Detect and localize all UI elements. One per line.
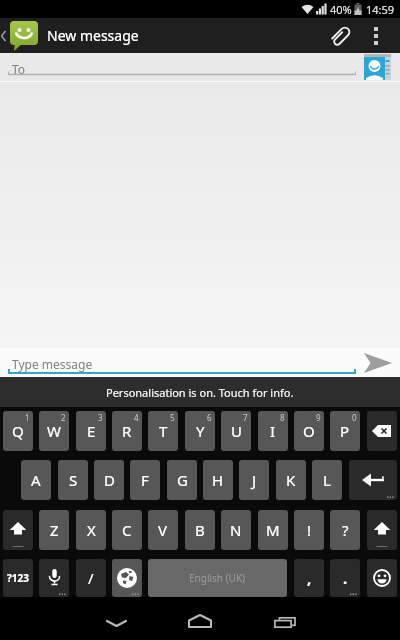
button[interactable]: J (239, 460, 269, 500)
staticText: Personalisation is on. Touch for info. (106, 385, 294, 400)
button[interactable] (364, 54, 391, 80)
button[interactable] (39, 559, 69, 597)
staticText: O (303, 421, 315, 441)
staticText: 3 (98, 412, 103, 423)
staticText: C (122, 520, 132, 540)
staticText: New message (47, 26, 139, 45)
staticText: H (212, 470, 224, 490)
staticText: N (230, 520, 242, 540)
button[interactable]: U (221, 411, 251, 451)
button[interactable] (265, 608, 305, 636)
button[interactable] (319, 18, 363, 53)
staticText: ! (307, 520, 312, 540)
button[interactable]: English (UK) (148, 559, 287, 597)
button[interactable] (364, 353, 392, 373)
staticText: 4 (134, 412, 139, 423)
staticText: R (122, 421, 132, 441)
button[interactable]: ? (330, 510, 360, 550)
staticText: 7 (243, 412, 248, 423)
staticText: K (286, 470, 296, 490)
button[interactable]: B (185, 510, 215, 550)
button[interactable]: K (276, 460, 306, 500)
staticText: 2 (61, 412, 66, 423)
staticText: To (12, 61, 26, 77)
staticText: ? (342, 520, 349, 540)
button[interactable] (356, 18, 396, 53)
staticText: D (104, 470, 115, 490)
button[interactable] (180, 607, 220, 635)
staticText: 8 (280, 412, 285, 423)
staticText: W (47, 421, 61, 441)
staticText: T (159, 421, 168, 441)
button[interactable]: V (148, 510, 178, 550)
button[interactable]: S (58, 460, 88, 500)
staticText: / (88, 568, 94, 588)
button[interactable] (349, 460, 397, 500)
staticText: 14:59 (366, 2, 395, 17)
button[interactable]: . (330, 559, 360, 597)
button[interactable]: New message (0, 18, 400, 53)
staticText: 40% (330, 2, 352, 17)
staticText: English (UK) (189, 571, 246, 585)
button[interactable]: E (76, 411, 106, 451)
button[interactable] (367, 411, 397, 451)
staticText: J (252, 470, 257, 490)
button[interactable]: G (167, 460, 197, 500)
button[interactable]: W (39, 411, 69, 451)
button[interactable]: ?123 (3, 559, 33, 597)
button[interactable]: T (148, 411, 178, 451)
staticText: 0 (352, 412, 357, 423)
button[interactable] (112, 559, 142, 597)
button[interactable]: Q (3, 411, 33, 451)
staticText: E (87, 421, 96, 441)
button[interactable]: / (76, 559, 106, 597)
staticText: P (340, 421, 350, 441)
staticText: F (141, 470, 149, 490)
button[interactable]: Y (185, 411, 215, 451)
button[interactable]: X (76, 510, 106, 550)
staticText: G (177, 470, 188, 490)
staticText: Z (50, 520, 59, 540)
button[interactable]: P (330, 411, 360, 451)
staticText: , (307, 568, 312, 588)
staticText: . (343, 568, 348, 588)
button[interactable]: F (130, 460, 160, 500)
staticText: S (69, 470, 78, 490)
button[interactable]: D (94, 460, 124, 500)
button[interactable]: H (203, 460, 233, 500)
button[interactable]: I (258, 411, 288, 451)
button[interactable]: A (21, 460, 51, 500)
button[interactable]: N (221, 510, 251, 550)
staticText: A (31, 470, 41, 490)
button[interactable]: R (112, 411, 142, 451)
button[interactable]: Personalisation is on. Touch for info. (0, 377, 400, 407)
staticText: L (323, 470, 331, 490)
staticText: Q (12, 421, 24, 441)
staticText: ?123 (7, 571, 29, 585)
staticText: V (158, 520, 168, 540)
staticText: X (87, 520, 96, 540)
button[interactable]: L (312, 460, 342, 500)
button[interactable] (367, 559, 397, 597)
button[interactable]: , (294, 559, 324, 597)
staticText: B (195, 520, 205, 540)
button[interactable] (3, 510, 33, 550)
staticText: I (270, 421, 276, 441)
button[interactable]: O (294, 411, 324, 451)
staticText: U (231, 421, 242, 441)
staticText: 6 (207, 412, 212, 423)
button[interactable]: C (112, 510, 142, 550)
staticText: 1 (25, 412, 30, 423)
staticText: M (266, 520, 280, 540)
staticText: 5 (170, 412, 175, 423)
button[interactable]: ! (294, 510, 324, 550)
button[interactable] (96, 609, 136, 637)
button[interactable]: Z (39, 510, 69, 550)
staticText: Y (196, 421, 205, 441)
staticText: Type message (12, 356, 93, 372)
staticText: 9 (316, 412, 321, 423)
button[interactable]: M (258, 510, 288, 550)
button[interactable] (367, 510, 397, 550)
